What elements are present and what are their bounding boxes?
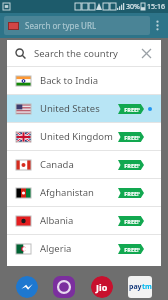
staticText: FREE! [124, 134, 139, 141]
button[interactable]: Clear [139, 46, 153, 60]
staticText: tm [142, 282, 152, 292]
staticText: pay [129, 282, 142, 292]
button[interactable]: United States [7, 95, 161, 122]
staticText: FREE! [124, 106, 139, 113]
button[interactable]: Afghanistan [7, 179, 161, 206]
button[interactable]: Jio [91, 276, 113, 298]
button[interactable]: More options [150, 16, 164, 35]
button[interactable]: Back to India [7, 67, 161, 94]
button[interactable]: Search or type URL [4, 16, 150, 35]
button[interactable]: App [53, 276, 75, 298]
staticText: Back to India [40, 74, 98, 87]
button[interactable]: United Kingdom [7, 123, 161, 150]
staticText: FREE! [124, 162, 139, 169]
staticText: United States [40, 102, 100, 115]
button[interactable]: Albania [7, 207, 161, 234]
staticText: FREE! [124, 190, 139, 197]
staticText: FREE! [124, 218, 139, 225]
button[interactable]: Search [7, 40, 161, 66]
staticText: Search or type URL [25, 20, 97, 31]
button[interactable]: Canada [7, 151, 161, 178]
staticText: 30% [126, 2, 140, 12]
staticText: Search the country [34, 47, 118, 60]
other: Search [15, 48, 26, 59]
button[interactable]: Paytm [128, 276, 152, 298]
staticText: FREE! [124, 246, 139, 253]
staticText: Algeria [40, 242, 72, 255]
staticText: United Kingdom [40, 130, 113, 143]
button[interactable]: Algeria [7, 235, 161, 262]
staticText: Canada [40, 158, 74, 171]
staticText: 15:16 [147, 2, 165, 12]
staticText: Albania [40, 214, 74, 227]
staticText: Afghanistan [40, 186, 94, 199]
staticText: Jio [96, 281, 108, 293]
button[interactable]: Messenger [16, 276, 38, 298]
